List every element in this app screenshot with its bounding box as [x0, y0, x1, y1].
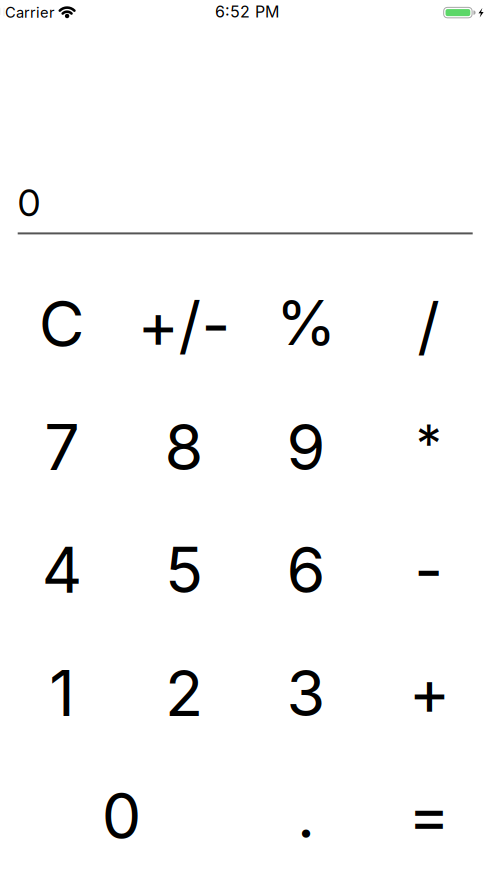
staticText: 2: [165, 655, 203, 731]
button[interactable]: +/-: [123, 264, 245, 386]
staticText: .: [297, 777, 315, 853]
staticText: Carrier: [5, 4, 55, 21]
staticText: -: [414, 532, 443, 608]
button[interactable]: /: [367, 264, 490, 387]
staticText: 9: [287, 409, 326, 485]
button[interactable]: 6: [245, 509, 367, 631]
button[interactable]: 1: [0, 632, 123, 754]
button[interactable]: %: [245, 261, 367, 384]
button[interactable]: 3: [245, 632, 367, 754]
button[interactable]: 5: [123, 509, 245, 631]
staticText: 6: [287, 532, 326, 608]
staticText: 1: [49, 655, 74, 731]
button[interactable]: .: [245, 754, 367, 876]
button[interactable]: -: [367, 509, 490, 631]
button[interactable]: 4: [0, 509, 123, 631]
button[interactable]: C: [0, 263, 123, 385]
staticText: 4: [42, 532, 82, 608]
button[interactable]: 9: [245, 386, 367, 508]
staticText: =: [408, 777, 449, 853]
button[interactable]: 8: [123, 386, 245, 508]
staticText: +: [409, 654, 450, 730]
staticText: 0: [102, 778, 142, 854]
button[interactable]: *: [367, 382, 490, 505]
button[interactable]: 2: [123, 632, 245, 754]
button[interactable]: 7: [0, 386, 123, 508]
staticText: 8: [164, 409, 203, 485]
staticText: C: [39, 286, 85, 362]
button[interactable]: =: [367, 754, 490, 876]
staticText: 5: [165, 532, 203, 608]
staticText: *: [416, 412, 442, 475]
button[interactable]: +: [368, 630, 491, 753]
button[interactable]: 0: [0, 755, 244, 877]
staticText: 7: [44, 409, 79, 485]
staticText: 3: [287, 655, 326, 731]
staticText: %: [276, 286, 336, 360]
staticText: 0: [17, 180, 40, 225]
staticText: 6:52 PM: [215, 2, 279, 21]
staticText: /: [417, 288, 440, 363]
staticText: +/-: [137, 287, 230, 363]
